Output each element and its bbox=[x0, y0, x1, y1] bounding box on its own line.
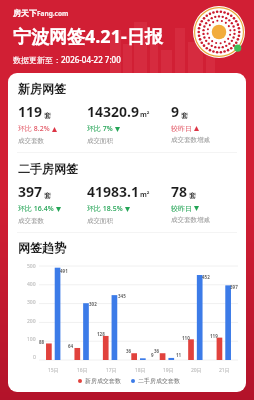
staticText: 套 bbox=[44, 191, 51, 200]
staticText: 452 bbox=[202, 274, 210, 280]
button[interactable]: 9 bbox=[171, 102, 240, 144]
button[interactable]: 房天下印章 bbox=[193, 6, 245, 58]
staticText: 500 bbox=[27, 263, 36, 270]
button[interactable]: 397 bbox=[18, 182, 87, 225]
staticText: 0 bbox=[33, 354, 36, 361]
staticText: 较昨日 bbox=[171, 204, 192, 213]
staticText: 21日 bbox=[219, 367, 230, 374]
staticText: 17日 bbox=[106, 367, 117, 374]
staticText: 成交面积 bbox=[87, 217, 113, 225]
staticText: 数据更新至：2026-04-22 7:00 bbox=[13, 54, 121, 65]
staticText: 119 bbox=[18, 102, 43, 121]
staticText: 环比 7% bbox=[87, 124, 113, 134]
staticText: 36 bbox=[126, 348, 132, 354]
staticText: 100 bbox=[27, 336, 36, 343]
staticText: m² bbox=[140, 190, 150, 200]
staticText: 110 bbox=[182, 335, 190, 341]
staticText: 9 bbox=[151, 352, 154, 358]
button[interactable]: 78 bbox=[171, 182, 240, 224]
button[interactable]: 新房成交套数 bbox=[78, 377, 121, 385]
staticText: 88 bbox=[39, 339, 45, 345]
button[interactable]: 二手房成交套数 bbox=[131, 377, 180, 385]
staticText: 9 bbox=[171, 102, 180, 121]
staticText: 16日 bbox=[77, 367, 88, 374]
staticText: 128 bbox=[97, 331, 105, 337]
staticText: 11 bbox=[176, 352, 182, 358]
staticText: 环比 16.4% bbox=[18, 204, 54, 214]
staticText: 套 bbox=[181, 111, 188, 120]
staticText: 300 bbox=[27, 299, 36, 306]
staticText: 成交套数 bbox=[18, 217, 44, 225]
staticText: 二手房网签 bbox=[18, 161, 78, 176]
staticText: 环比 8.2% bbox=[18, 124, 50, 134]
staticText: 房天下 bbox=[13, 8, 37, 18]
staticText: 491 bbox=[60, 268, 68, 274]
staticText: 20日 bbox=[191, 367, 202, 374]
staticText: 环比 18.5% bbox=[87, 204, 123, 214]
staticText: 64 bbox=[68, 343, 74, 349]
staticText: 400 bbox=[27, 281, 36, 288]
staticText: 18日 bbox=[135, 367, 146, 374]
button[interactable]: 41983.1 bbox=[87, 182, 171, 225]
staticText: 成交套数增减 bbox=[171, 216, 210, 224]
button[interactable]: 14320.9 bbox=[87, 102, 171, 145]
staticText: 397 bbox=[18, 182, 43, 201]
staticText: 宁波网签4.21-日报 bbox=[13, 24, 163, 49]
staticText: 新房网签 bbox=[18, 81, 66, 96]
staticText: 套 bbox=[189, 191, 196, 200]
staticText: 397 bbox=[230, 284, 238, 290]
staticText: 成交面积 bbox=[87, 137, 113, 145]
staticText: 成交套数 bbox=[18, 137, 44, 145]
staticText: 302 bbox=[89, 301, 97, 307]
staticText: 新房成交套数 bbox=[85, 377, 121, 385]
staticText: 36 bbox=[154, 348, 160, 354]
staticText: 二手房成交套数 bbox=[138, 377, 180, 385]
staticText: m² bbox=[140, 110, 150, 120]
staticText: 套 bbox=[44, 111, 51, 120]
staticText: 成交套数增减 bbox=[171, 136, 210, 144]
staticText: 较昨日 bbox=[171, 124, 192, 133]
staticText: 网签趋势 bbox=[18, 240, 66, 255]
staticText: 200 bbox=[27, 318, 36, 325]
staticText: 14320.9 bbox=[87, 102, 139, 121]
staticText: 19日 bbox=[163, 367, 174, 374]
staticText: 15日 bbox=[48, 367, 59, 374]
staticText: 41983.1 bbox=[87, 182, 139, 201]
button[interactable]: 房天下 bbox=[13, 8, 69, 18]
staticText: 119 bbox=[210, 333, 218, 339]
staticText: 78 bbox=[171, 182, 188, 201]
staticText: Fang.com bbox=[37, 9, 69, 18]
staticText: 345 bbox=[118, 293, 126, 299]
button[interactable]: 119 bbox=[18, 102, 87, 145]
